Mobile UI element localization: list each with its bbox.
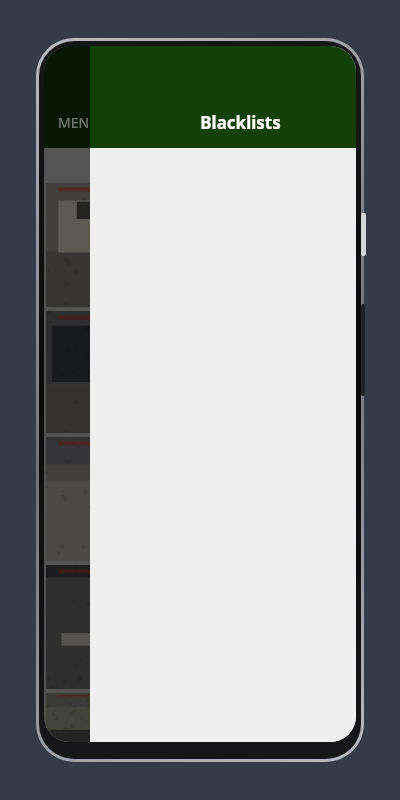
button[interactable] bbox=[46, 693, 354, 742]
button[interactable] bbox=[46, 437, 354, 561]
button[interactable] bbox=[46, 311, 354, 433]
button[interactable]: MENU bbox=[58, 113, 100, 132]
staticText: Blacklists bbox=[200, 111, 281, 134]
button[interactable] bbox=[46, 183, 354, 307]
button[interactable] bbox=[46, 565, 354, 689]
